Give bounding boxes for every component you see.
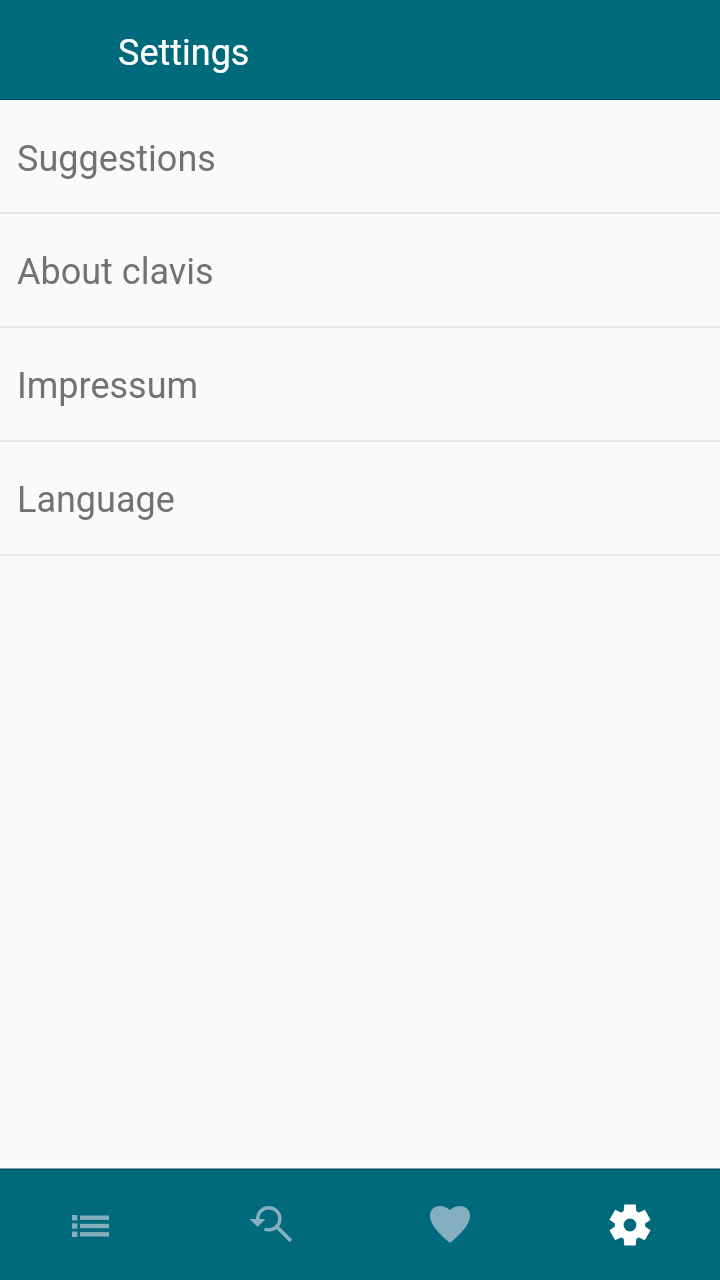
staticText: About clavis (17, 251, 214, 293)
button[interactable]: Settings (540, 1170, 720, 1280)
button[interactable]: Language (0, 442, 720, 556)
button[interactable]: Search history (180, 1170, 360, 1280)
button[interactable]: Favorites (360, 1170, 540, 1280)
staticText: Suggestions (17, 138, 216, 180)
button[interactable]: Word list (0, 1170, 180, 1280)
staticText: Settings (118, 32, 250, 74)
staticText: Impressum (17, 365, 199, 407)
button[interactable]: Impressum (0, 328, 720, 442)
button[interactable]: About clavis (0, 214, 720, 328)
button[interactable]: Suggestions (0, 101, 720, 214)
staticText: Language (17, 479, 175, 521)
